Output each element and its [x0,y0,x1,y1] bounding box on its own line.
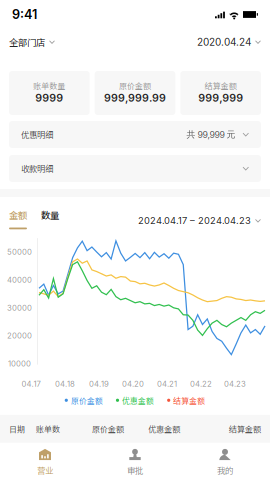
staticText: 原价金额 [71,395,103,406]
staticText: 999,999 [198,91,243,104]
button[interactable]: 金额 [9,208,27,229]
staticText: 50000 [7,247,32,257]
staticText: 04.19 [89,379,109,389]
button[interactable]: 营业 [0,444,90,479]
button[interactable]: 收款明细 [9,155,261,182]
staticText: 全部门店 [9,35,45,49]
staticText: 10000 [8,359,31,368]
button[interactable]: 全部门店 [9,29,57,55]
staticText: 优惠明细 [21,128,53,140]
staticText: 04.20 [122,379,144,389]
staticText: 共 99,999 元 [186,129,235,140]
button[interactable]: 2020.04.24 [195,30,261,54]
staticText: 审批 [127,464,143,476]
staticText: 9999 [35,91,63,104]
staticText: 30000 [7,303,32,312]
button[interactable]: 2024.04.17 – 2024.04.23 [138,215,261,229]
staticText: 结算金额 [205,80,237,91]
staticText: 04.22 [190,379,212,389]
staticText: 9:41 [12,7,37,22]
staticText: 优惠金额 [122,395,154,406]
staticText: 20000 [7,331,32,340]
staticText: 40000 [7,275,32,285]
staticText: 04.17 [21,379,40,389]
button[interactable]: 我的 [180,444,270,479]
staticText: 账单数量 [33,80,65,91]
staticText: 账单数 [36,423,60,435]
staticText: 结算金额 [229,423,261,435]
staticText: 04.18 [55,379,75,389]
staticText: 优惠金额 [148,423,180,435]
button[interactable]: 数量 [41,208,59,229]
staticText: 我的 [217,464,233,476]
staticText: 04.23 [224,379,246,389]
staticText: 日期 [9,423,25,435]
staticText: 原价金额 [119,80,151,91]
staticText: 2024.04.17 – 2024.04.23 [138,215,251,226]
staticText: 营业 [37,464,53,476]
staticText: 999,999.99 [104,91,166,104]
staticText: 04.21 [157,379,177,389]
staticText: 原价金额 [92,423,124,435]
staticText: 金额 [9,208,27,221]
staticText: 结算金额 [173,395,205,406]
button[interactable]: 审批 [90,444,180,479]
staticText: 2020.04.24 [197,36,251,48]
staticText: 收款明细 [21,162,53,174]
button[interactable]: 优惠明细 [9,121,261,148]
staticText: 数量 [41,208,59,221]
